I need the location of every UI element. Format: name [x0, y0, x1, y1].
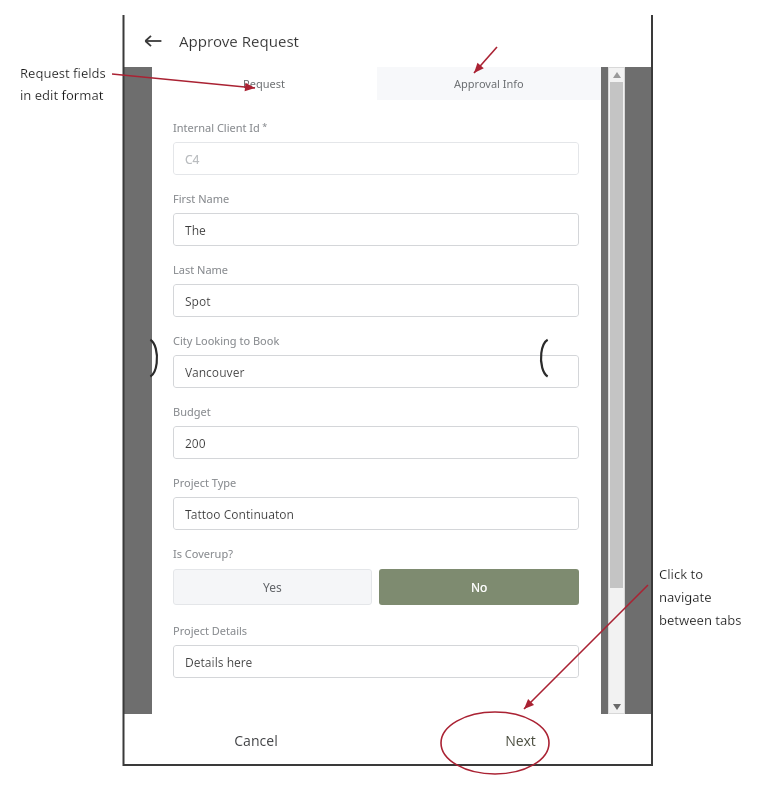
- staticText: 200: [185, 435, 206, 451]
- staticText: Next: [505, 731, 536, 750]
- staticText: Request fields: [20, 64, 106, 82]
- staticText: Approval Info: [454, 76, 524, 91]
- staticText: between tabs: [659, 611, 742, 629]
- button[interactable]: Tattoo Continuaton: [173, 497, 579, 530]
- staticText: The: [185, 222, 206, 238]
- staticText: Is Coverup?: [173, 546, 233, 561]
- staticText: Approval fields: [496, 31, 587, 49]
- button[interactable]: Next: [388, 714, 653, 766]
- staticText: No: [471, 579, 488, 595]
- staticText: First Name: [173, 191, 230, 206]
- staticText: Project Details: [173, 623, 248, 638]
- staticText: Last Name: [173, 262, 229, 277]
- button[interactable]: Approval Info: [377, 67, 601, 100]
- staticText: Cancel: [234, 731, 278, 750]
- staticText: Approve Request: [179, 31, 300, 51]
- button[interactable]: Vancouver: [173, 355, 579, 388]
- staticText: in edit format: [20, 86, 104, 104]
- staticText: Tattoo Continuaton: [185, 506, 295, 522]
- staticText: Yes: [263, 579, 282, 595]
- staticText: Internal Client Id: [173, 120, 260, 135]
- button[interactable]: Yes: [173, 569, 372, 605]
- staticText: Vancouver: [185, 364, 245, 380]
- staticText: *: [260, 120, 268, 132]
- button[interactable]: Cancel: [123, 714, 388, 766]
- button[interactable]: No: [379, 569, 579, 605]
- button[interactable]: 200: [173, 426, 579, 459]
- button[interactable]: Scroll up: [608, 67, 625, 82]
- staticText: Click to: [659, 565, 704, 583]
- staticText: Details here: [185, 654, 253, 670]
- button[interactable]: C4: [173, 142, 579, 175]
- button[interactable]: Back: [137, 25, 169, 57]
- button[interactable]: Details here: [173, 645, 579, 678]
- staticText: Spot: [185, 293, 211, 309]
- staticText: City Looking to Book: [173, 333, 280, 348]
- button[interactable]: Request: [152, 67, 377, 100]
- staticText: Request: [243, 76, 286, 91]
- staticText: C4: [185, 151, 200, 167]
- staticText: navigate: [659, 588, 712, 606]
- button[interactable]: Spot: [173, 284, 579, 317]
- button[interactable]: Scroll down: [608, 699, 625, 714]
- staticText: Budget: [173, 404, 211, 419]
- staticText: Project Type: [173, 475, 237, 490]
- button[interactable]: The: [173, 213, 579, 246]
